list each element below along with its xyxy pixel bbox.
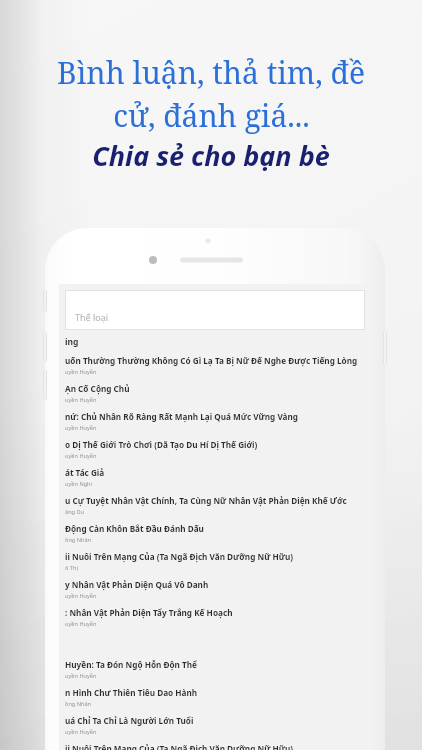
staticText: uyền Huyễn xyxy=(65,620,97,628)
button[interactable]: u Cự Tuyệt Nhân Vật Chính, Ta Cùng Nữ Nh… xyxy=(59,495,371,523)
staticText: o Dị Thế Giới Trò Chơi (Dã Tạo Du Hí Dị … xyxy=(65,439,258,450)
staticText: y Nhân Vật Phản Diện Quá Vô Danh xyxy=(65,579,209,590)
staticText: Thể loại xyxy=(75,311,109,323)
button[interactable]: Huyền: Ta Đón Ngộ Hỗn Độn Thể xyxy=(59,659,371,687)
button[interactable]: : Nhân Vật Phản Diện Tẩy Trắng Kế Hoạch xyxy=(59,607,371,635)
staticText: ii Nuôi Trên Mạng Của (Ta Ngã Địch Văn D… xyxy=(65,743,294,750)
button[interactable]: nứ: Chủ Nhân Rõ Ràng Rất Mạnh Lại Quá Mứ… xyxy=(59,411,371,439)
button[interactable]: Động Càn Khôn Bắt Đầu Đánh Dấu xyxy=(59,523,371,551)
staticText: nứ: Chủ Nhân Rõ Ràng Rất Mạnh Lại Quá Mứ… xyxy=(65,411,298,422)
button[interactable]: ii Nuôi Trên Mạng Của (Ta Ngã Địch Văn D… xyxy=(59,743,371,750)
button[interactable]: át Tác Giả xyxy=(59,467,371,495)
staticText: ing xyxy=(65,336,79,348)
button[interactable]: n Hình Chư Thiên Tiêu Dao Hành xyxy=(59,687,371,715)
staticText: ồng Nhân xyxy=(65,700,92,708)
staticText: uyền Huyễn xyxy=(65,672,97,680)
staticText: uá Chỉ Ta Chỉ Là Người Lớn Tuổi xyxy=(65,715,194,726)
button[interactable]: o Dị Thế Giới Trò Chơi (Dã Tạo Du Hí Dị … xyxy=(59,439,371,467)
staticText: ãng Du xyxy=(65,508,85,516)
staticText: uyền Huyễn xyxy=(65,452,97,460)
staticText: : Nhân Vật Phản Diện Tẩy Trắng Kế Hoạch xyxy=(65,607,233,618)
staticText: uyền Huyễn xyxy=(65,368,97,376)
staticText: Bình luận, thả tim, đề xyxy=(57,52,365,93)
staticText: Huyền: Ta Đón Ngộ Hỗn Độn Thể xyxy=(65,659,197,670)
staticText: n Hình Chư Thiên Tiêu Dao Hành xyxy=(65,687,198,698)
staticText: át Tác Giả xyxy=(65,467,105,478)
staticText: u Cự Tuyệt Nhân Vật Chính, Ta Cùng Nữ Nh… xyxy=(65,495,347,506)
button[interactable]: ii Nuôi Trên Mạng Của (Ta Ngã Địch Văn D… xyxy=(59,551,371,579)
staticText: uốn Thường Thường Không Có Gì Lạ Ta Bị N… xyxy=(65,355,358,366)
staticText: uyền Huyễn xyxy=(65,592,97,600)
staticText: Ạn Cố Cộng Chủ xyxy=(65,383,130,394)
staticText: uyền Huyễn xyxy=(65,396,97,404)
staticText: uyền Huyễn xyxy=(65,424,97,432)
button[interactable]: uá Chỉ Ta Chỉ Là Người Lớn Tuổi xyxy=(59,715,371,743)
button[interactable]: y Nhân Vật Phản Diện Quá Vô Danh xyxy=(59,579,371,607)
button[interactable]: uốn Thường Thường Không Có Gì Lạ Ta Bị N… xyxy=(59,355,371,383)
staticText: ồng Nhân xyxy=(65,536,92,544)
staticText: Chia sẻ cho bạn bè xyxy=(92,137,330,174)
staticText: ô Thị xyxy=(65,564,78,572)
staticText: uyền Huyễn xyxy=(65,728,97,736)
staticText: cử, đánh giá... xyxy=(113,95,310,136)
staticText: Động Càn Khôn Bắt Đầu Đánh Dấu xyxy=(65,523,204,534)
button[interactable]: Ạn Cố Cộng Chủ xyxy=(59,383,371,411)
staticText: ii Nuôi Trên Mạng Của (Ta Ngã Địch Văn D… xyxy=(65,551,294,562)
button[interactable]: Thể loại xyxy=(65,290,365,330)
staticText: uyền Nghi xyxy=(65,480,92,488)
